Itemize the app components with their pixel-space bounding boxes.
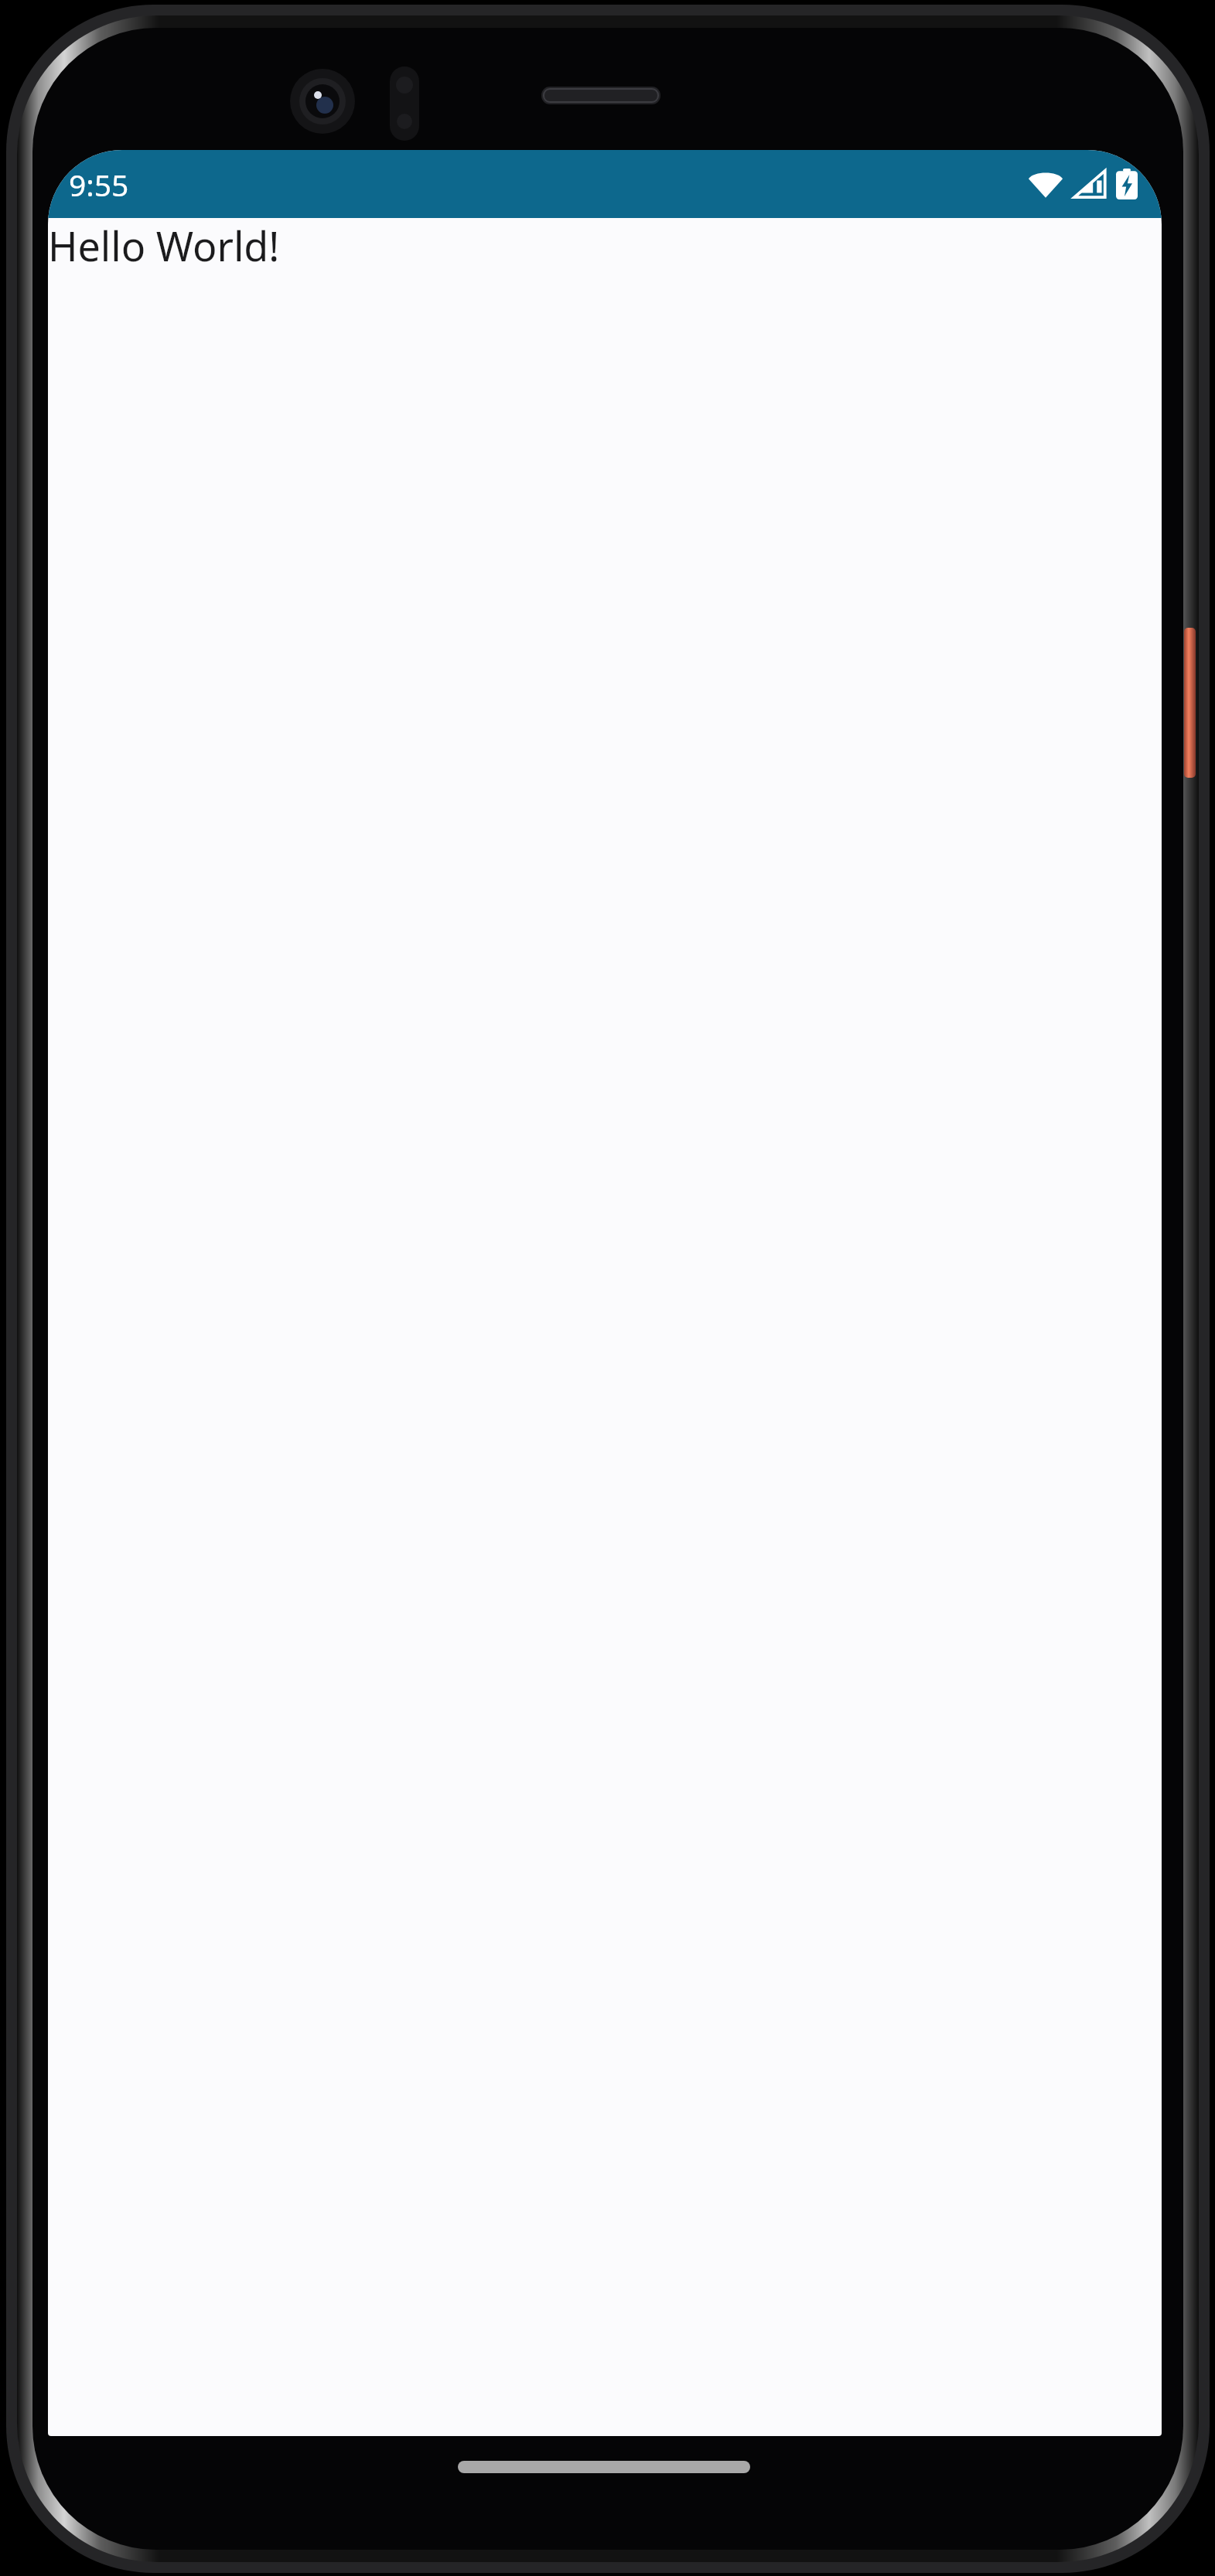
staticText: Hello World! [48, 218, 280, 273]
other: Power button [1184, 628, 1196, 778]
other: Home gesture bar [458, 2461, 750, 2473]
staticText: 9:55 [69, 164, 129, 205]
